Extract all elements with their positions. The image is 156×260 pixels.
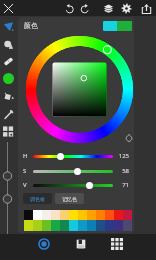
staticText: 颜色 [24, 21, 38, 30]
button[interactable] [33, 151, 113, 161]
button[interactable]: Close [1, 1, 15, 15]
button[interactable]: Settings [119, 1, 133, 15]
staticText: 58 [113, 167, 129, 175]
staticText: H [23, 152, 28, 160]
button[interactable]: Redo [77, 1, 91, 15]
button[interactable]: Layers [101, 1, 115, 15]
staticText: S [23, 167, 27, 175]
staticText: V [23, 181, 27, 189]
staticText: 71 [113, 181, 129, 189]
button[interactable]: Brush size [36, 236, 51, 251]
staticText: 125 [113, 152, 129, 160]
button[interactable]: Save [73, 236, 88, 251]
button[interactable]: Eyedropper [1, 107, 15, 121]
button[interactable] [103, 21, 132, 31]
button[interactable] [33, 166, 113, 176]
button[interactable]: Grid [109, 236, 124, 251]
button[interactable]: Color [1, 71, 15, 85]
button[interactable]: Share [139, 1, 153, 15]
button[interactable]: Eraser [1, 54, 15, 68]
staticText: 记忆色 [62, 196, 77, 202]
button[interactable]: Brush [1, 19, 15, 33]
button[interactable]: Smudge [1, 37, 15, 51]
button[interactable]: Pattern [1, 124, 15, 138]
button[interactable]: Fill [1, 90, 15, 104]
button[interactable] [33, 180, 113, 190]
button[interactable]: Undo [62, 1, 76, 15]
button[interactable]: 记忆色 [55, 193, 84, 204]
staticText: 调色板 [30, 196, 45, 202]
button[interactable]: 调色板 [23, 193, 52, 204]
button[interactable]: Opacity [122, 131, 134, 144]
